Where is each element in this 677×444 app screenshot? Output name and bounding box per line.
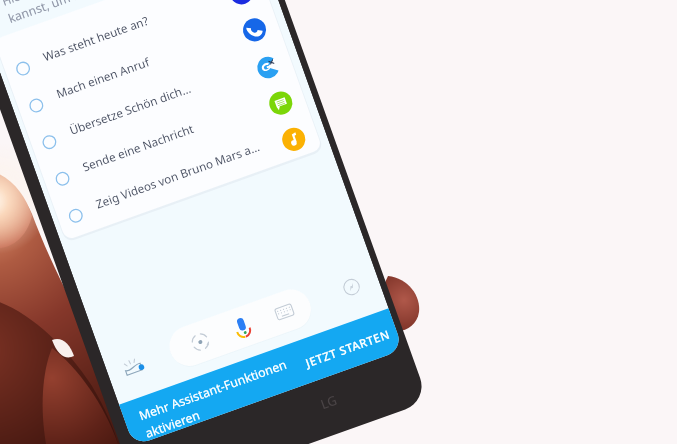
button[interactable]: Google Assistant phone screen [0, 0, 677, 444]
